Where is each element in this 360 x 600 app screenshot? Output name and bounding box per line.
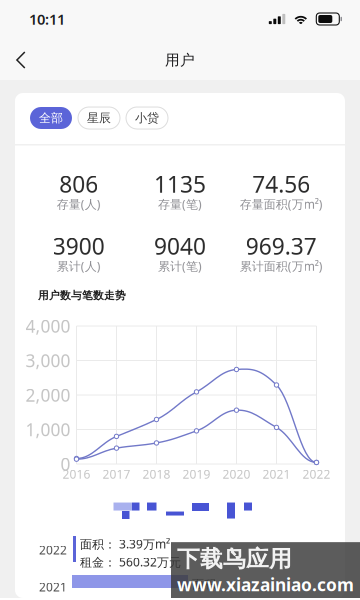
staticText: 74.56	[252, 169, 310, 199]
staticText: 用户数与笔数走势	[38, 289, 126, 302]
staticText: 969.37	[246, 231, 317, 261]
staticText: 2016	[62, 466, 90, 482]
staticText: 2,000	[25, 383, 70, 406]
staticText: 10:11	[29, 9, 65, 29]
staticText: 星辰	[87, 111, 111, 125]
staticText: 806	[59, 169, 98, 199]
button[interactable]: 返回	[0, 40, 42, 80]
staticText: 0	[60, 452, 70, 475]
staticText: 2021	[39, 579, 67, 595]
staticText: 累计面积(万m²)	[240, 258, 323, 274]
staticText: 累计(人)	[57, 258, 101, 274]
staticText: 面积： 3.39万m²	[80, 536, 170, 552]
button[interactable]: 小贷	[126, 107, 168, 129]
staticText: 存量(人)	[57, 196, 101, 212]
staticText: 存量(笔)	[158, 196, 202, 212]
staticText: 2020	[222, 466, 250, 482]
staticText: 3900	[53, 231, 105, 261]
staticText: 9040	[154, 231, 206, 261]
staticText: 2021	[262, 466, 290, 482]
staticText: 用户	[165, 51, 195, 69]
button[interactable]: 全部	[30, 107, 72, 129]
staticText: 4,000	[25, 314, 70, 337]
staticText: 2017	[102, 466, 130, 482]
staticText: 存量面积(万m²)	[240, 196, 323, 212]
staticText: 下载鸟应用	[177, 545, 292, 573]
staticText: 1,000	[25, 418, 70, 441]
staticText: 小贷	[135, 111, 159, 125]
staticText: 2019	[182, 466, 210, 482]
staticText: www.xiazainiao.com	[177, 573, 354, 596]
staticText: 面积	[192, 577, 216, 592]
staticText: 2018	[142, 466, 170, 482]
staticText: 3,000	[25, 349, 70, 372]
button[interactable]: 星辰	[78, 107, 120, 129]
staticText: 2022	[39, 542, 67, 558]
staticText: 租金： 560.32万元	[80, 554, 181, 570]
staticText: 累计(笔)	[158, 258, 202, 274]
staticText: 2022	[302, 466, 330, 482]
staticText: 全部	[39, 111, 63, 125]
staticText: 1135	[154, 169, 206, 199]
